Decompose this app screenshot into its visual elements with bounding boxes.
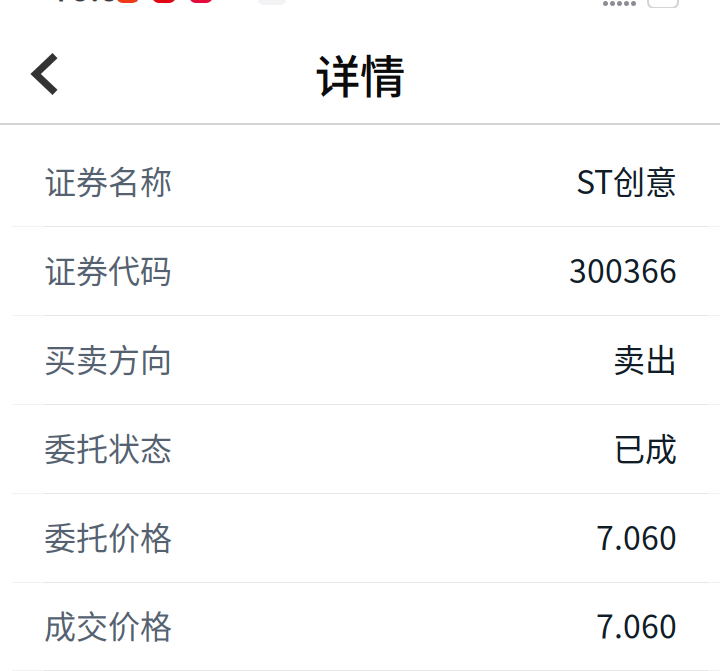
staticText: 委托价格 bbox=[44, 513, 172, 559]
staticText: 证券代码 bbox=[44, 246, 172, 292]
staticText: 买卖方向 bbox=[44, 335, 172, 381]
staticText: 成交价格 bbox=[44, 601, 172, 648]
staticText: 证券名称 bbox=[44, 157, 172, 203]
staticText: 已成 bbox=[613, 424, 677, 470]
button[interactable]: 成交价格 bbox=[0, 583, 720, 671]
button[interactable]: Back bbox=[0, 27, 90, 120]
button[interactable]: 证券名称 bbox=[0, 138, 720, 227]
staticText: 7.060 bbox=[596, 513, 677, 559]
staticText: 详情 bbox=[315, 41, 405, 107]
button[interactable]: 委托价格 bbox=[0, 494, 720, 583]
staticText: 10:02 bbox=[50, 0, 139, 11]
staticText: 300366 bbox=[569, 246, 677, 292]
button[interactable]: 买卖方向 bbox=[0, 316, 720, 405]
staticText: ST创意 bbox=[576, 157, 677, 203]
staticText: 委托状态 bbox=[44, 424, 172, 470]
button[interactable]: 证券代码 bbox=[0, 227, 720, 316]
staticText: 7.060 bbox=[596, 601, 677, 648]
staticText: 卖出 bbox=[613, 335, 677, 381]
button[interactable]: 委托状态 bbox=[0, 405, 720, 494]
